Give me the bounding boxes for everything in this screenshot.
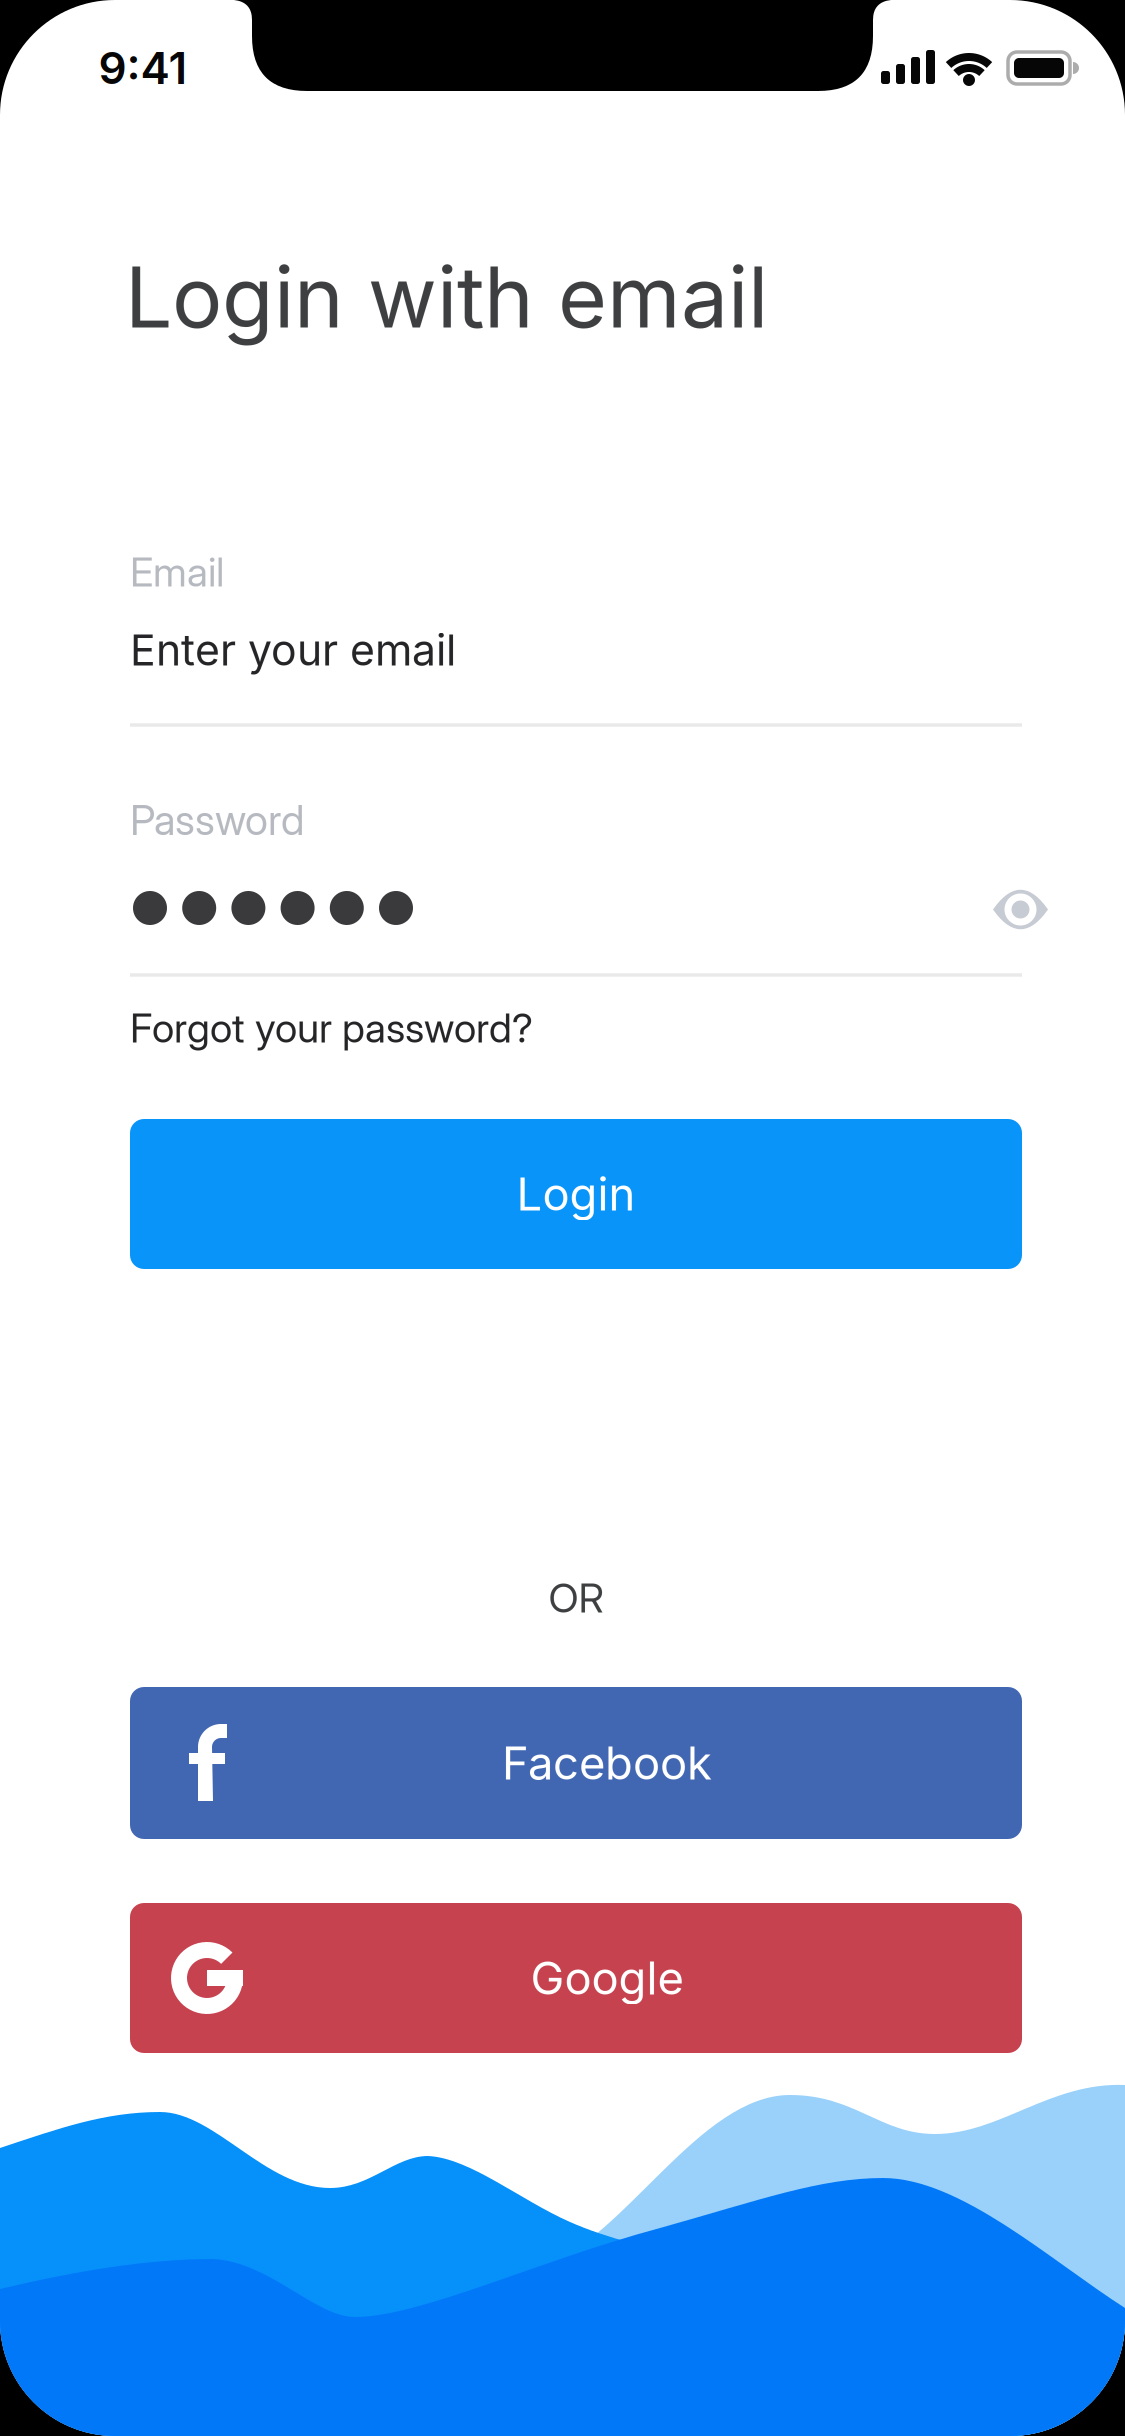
staticText: Enter your email xyxy=(130,624,456,676)
staticText: Password xyxy=(130,795,304,845)
staticText: Facebook xyxy=(502,1736,712,1790)
staticText: Email xyxy=(130,548,224,596)
button[interactable]: Facebook xyxy=(130,1687,1022,1839)
staticText: OR xyxy=(548,1574,603,1622)
staticText: Login xyxy=(516,1167,635,1221)
button[interactable]: Forgot your password? xyxy=(130,1004,995,1052)
button[interactable]: Login xyxy=(130,1119,1022,1269)
staticText: Forgot your password? xyxy=(130,1004,533,1052)
staticText: Login with email xyxy=(125,246,768,348)
button[interactable]: Show password xyxy=(0,0,1125,2436)
staticText: 9:41 xyxy=(98,41,187,95)
staticText: Google xyxy=(530,1951,683,2005)
button[interactable]: Google xyxy=(130,1903,1022,2053)
